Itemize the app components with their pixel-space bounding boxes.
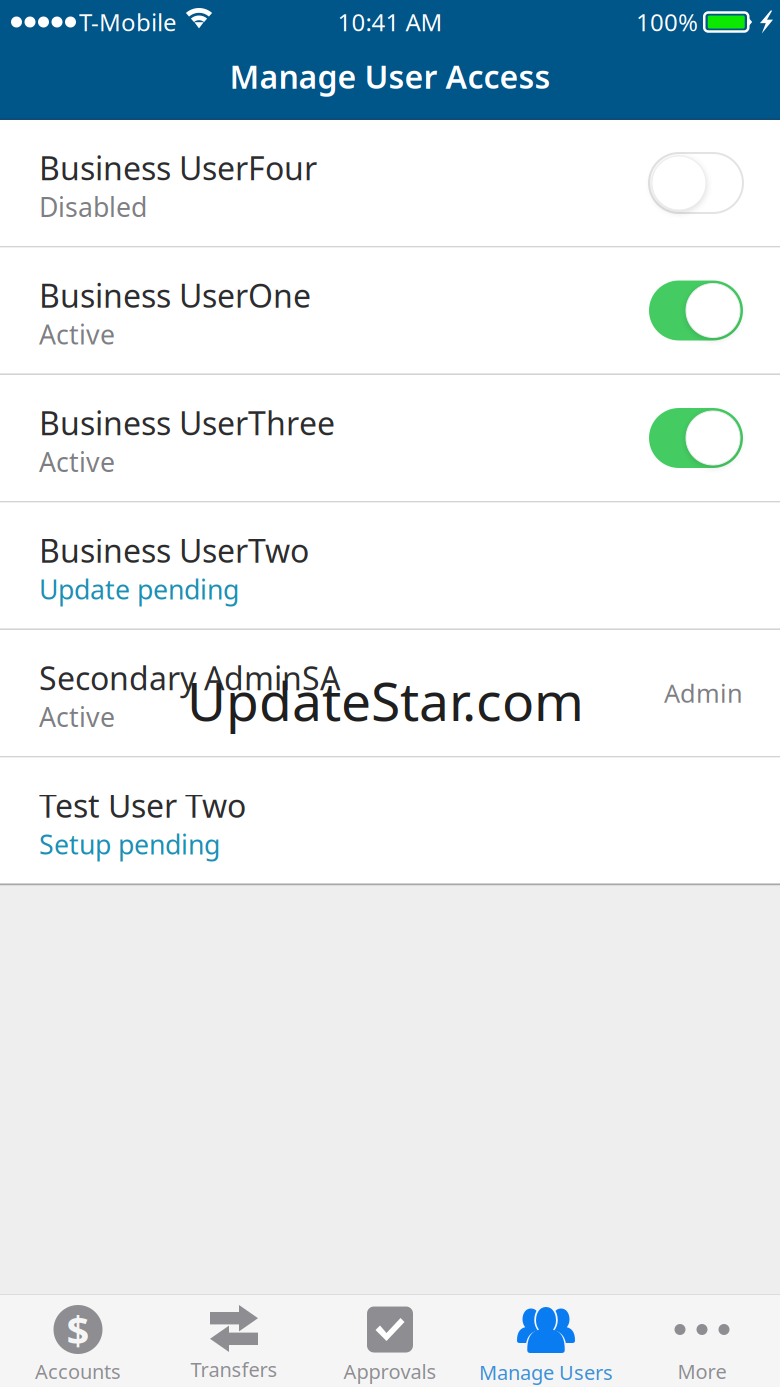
staticText: Business UserThree xyxy=(39,401,335,444)
staticText: Setup pending xyxy=(39,826,220,862)
staticText: Test User Two xyxy=(39,784,246,826)
button[interactable]: Business UserOne xyxy=(0,247,780,373)
staticText: More xyxy=(677,1358,726,1385)
staticText: Manage User Access xyxy=(229,55,550,97)
staticText: Transfers xyxy=(190,1356,277,1383)
staticText: T-Mobile xyxy=(79,6,177,38)
button[interactable]: Business UserTwo xyxy=(0,502,780,628)
staticText: Secondary AdminSA xyxy=(39,656,340,699)
staticText: Accounts xyxy=(35,1358,121,1385)
button[interactable]: Transfers xyxy=(156,1295,312,1387)
staticText: Manage Users xyxy=(479,1359,613,1386)
button[interactable]: Business UserFour xyxy=(0,120,780,246)
button[interactable]: Business UserThree xyxy=(0,375,780,501)
staticText: $ xyxy=(66,1303,89,1356)
staticText: Active xyxy=(39,316,115,352)
button[interactable]: Manage Users xyxy=(468,1295,624,1387)
staticText: 10:41 AM xyxy=(337,6,442,38)
staticText: Business UserTwo xyxy=(39,529,309,571)
staticText: UpdateStar.com xyxy=(187,665,584,736)
staticText: Business UserOne xyxy=(39,274,311,316)
staticText: Approvals xyxy=(343,1358,436,1385)
button[interactable]: Secondary AdminSA xyxy=(0,630,780,756)
staticText: Active xyxy=(39,699,115,734)
button[interactable]: More xyxy=(624,1295,780,1387)
staticText: Update pending xyxy=(39,571,239,607)
staticText: Active xyxy=(39,444,115,479)
staticText: Admin xyxy=(664,676,743,710)
button[interactable]: $ xyxy=(0,1295,156,1387)
button[interactable]: Test User Two xyxy=(0,757,780,883)
button[interactable]: Approvals xyxy=(312,1295,468,1387)
staticText: Business UserFour xyxy=(39,146,317,189)
staticText: Disabled xyxy=(39,189,147,224)
staticText: 100% xyxy=(636,6,698,38)
